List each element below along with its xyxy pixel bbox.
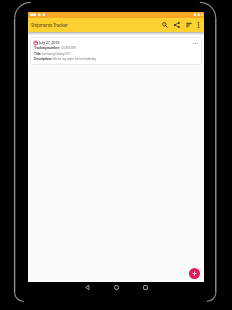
staticText: Title: Samsung Galaxy S10 bbox=[34, 51, 71, 56]
button[interactable] bbox=[171, 18, 183, 32]
staticText: Tracking number: 123456789 bbox=[34, 45, 76, 50]
button[interactable] bbox=[195, 18, 204, 32]
button[interactable] bbox=[73, 282, 102, 293]
staticText: Shipments Tracker bbox=[31, 22, 68, 29]
button[interactable] bbox=[131, 282, 160, 293]
button[interactable]: July 27, 2019 bbox=[30, 37, 202, 65]
button[interactable] bbox=[102, 282, 131, 293]
button[interactable] bbox=[159, 18, 171, 32]
button[interactable] bbox=[183, 18, 195, 32]
staticText: July 27, 2019 bbox=[39, 40, 60, 45]
staticText: Description: Gift for my sister for her … bbox=[34, 56, 96, 61]
button[interactable] bbox=[189, 268, 200, 279]
